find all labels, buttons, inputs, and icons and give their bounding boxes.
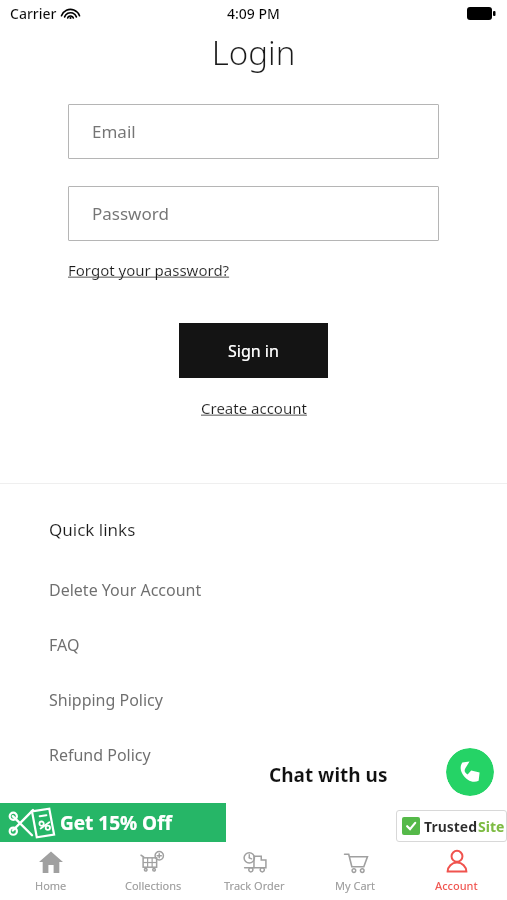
staticText: 4:09 PM	[227, 4, 280, 23]
staticText: Site	[478, 817, 505, 836]
button[interactable]: Refund Policy	[0, 744, 507, 766]
staticText: Login	[0, 30, 507, 75]
button[interactable]: Create account	[201, 396, 307, 420]
button[interactable]: Forgot your password?	[68, 258, 230, 282]
staticText: Delete Your Account	[49, 579, 202, 601]
button[interactable]: Password	[68, 186, 439, 241]
staticText: Sign in	[228, 340, 279, 362]
staticText: Get 15% Off	[60, 810, 172, 836]
staticText: Shipping Policy	[49, 689, 163, 711]
staticText: Forgot your password?	[68, 260, 230, 280]
staticText: Account	[435, 878, 478, 893]
staticText: Quick links	[49, 518, 136, 541]
button[interactable]: Account	[406, 842, 507, 900]
staticText: Password	[92, 202, 169, 225]
staticText: Collections	[125, 878, 182, 893]
staticText: Email	[92, 120, 136, 143]
staticText: Refund Policy	[49, 744, 151, 766]
staticText: Create account	[201, 398, 307, 418]
button[interactable]: Email	[68, 104, 439, 159]
staticText: Chat with us	[269, 762, 388, 788]
staticText: Carrier	[10, 4, 57, 23]
button[interactable]: Shipping Policy	[0, 689, 507, 711]
button[interactable]: FAQ	[0, 634, 507, 656]
staticText: FAQ	[49, 634, 80, 656]
staticText: Home	[35, 878, 67, 893]
button[interactable]: Chat on WhatsApp	[446, 748, 494, 796]
button[interactable]: Sign in	[179, 323, 328, 378]
button[interactable]: Trusted	[396, 810, 507, 842]
button[interactable]: Get 15% Off	[0, 803, 226, 842]
button[interactable]: My Cart	[305, 842, 406, 900]
staticText: My Cart	[335, 878, 376, 893]
staticText: Trusted	[424, 817, 478, 836]
button[interactable]: Collections	[102, 842, 204, 900]
staticText: Track Order	[224, 878, 285, 893]
button[interactable]: Delete Your Account	[0, 579, 507, 601]
button[interactable]: Track Order	[204, 842, 305, 900]
button[interactable]: Home	[0, 842, 102, 900]
